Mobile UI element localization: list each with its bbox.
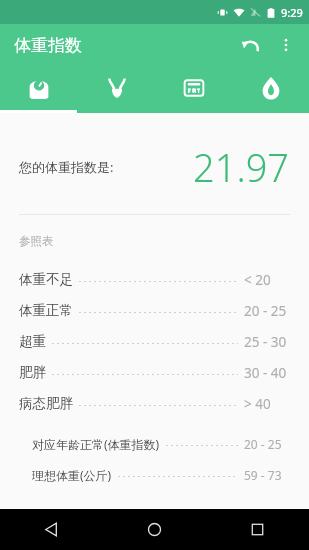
button[interactable]: 病态肥胖 bbox=[0, 388, 309, 419]
button[interactable]: Body fat tab bbox=[155, 66, 232, 110]
button[interactable]: 肥胖 bbox=[0, 357, 309, 388]
staticText: 理想体重(公斤) bbox=[32, 467, 112, 483]
staticText: 9:29 bbox=[281, 5, 303, 20]
button[interactable]: More options bbox=[269, 28, 303, 62]
button[interactable]: Scale tab bbox=[0, 66, 78, 110]
staticText: > 40 bbox=[244, 395, 290, 413]
button[interactable]: 对应年龄正常(体重指数) bbox=[0, 428, 309, 459]
staticText: < 20 bbox=[244, 271, 290, 289]
staticText: 体重指数 bbox=[14, 35, 82, 56]
staticText: 21.97 bbox=[193, 141, 290, 193]
staticText: 病态肥胖 bbox=[19, 395, 73, 412]
button[interactable]: 理想体重(公斤) bbox=[0, 459, 309, 490]
staticText: 20 - 25 bbox=[244, 436, 290, 452]
staticText: 59 - 73 bbox=[244, 467, 290, 483]
staticText: 体重正常 bbox=[19, 302, 73, 319]
staticText: 对应年龄正常(体重指数) bbox=[32, 436, 160, 452]
staticText: 您的体重指数是: bbox=[19, 158, 114, 176]
button[interactable]: 体重不足 bbox=[0, 264, 309, 295]
button[interactable]: Back bbox=[0, 509, 103, 550]
button[interactable]: Recent apps bbox=[206, 509, 309, 550]
staticText: 超重 bbox=[19, 333, 46, 350]
button[interactable]: Undo bbox=[231, 26, 269, 64]
button[interactable]: Home bbox=[103, 509, 206, 550]
button[interactable]: 超重 bbox=[0, 326, 309, 357]
button[interactable]: Body shape tab bbox=[78, 66, 155, 110]
staticText: 体重不足 bbox=[19, 271, 73, 288]
staticText: 25 - 30 bbox=[244, 333, 290, 351]
button[interactable]: Calories tab bbox=[232, 66, 309, 110]
staticText: 20 - 25 bbox=[244, 302, 290, 320]
staticText: 30 - 40 bbox=[244, 364, 290, 382]
staticText: 参照表 bbox=[19, 234, 54, 248]
staticText: 肥胖 bbox=[19, 364, 46, 381]
button[interactable]: 体重正常 bbox=[0, 295, 309, 326]
